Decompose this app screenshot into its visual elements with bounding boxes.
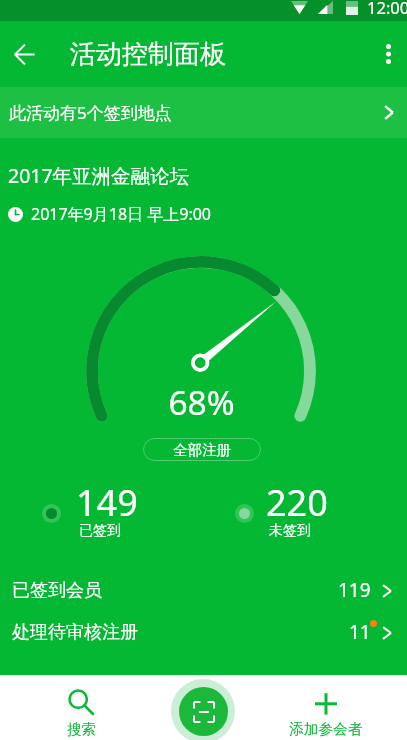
button[interactable]: 全部注册 xyxy=(143,438,261,461)
staticText: 68% xyxy=(0,379,405,425)
staticText: 搜索 xyxy=(67,720,96,738)
staticText: 2017年9月18日 早上9:00 xyxy=(31,203,211,225)
button[interactable]: Back xyxy=(0,30,48,78)
staticText: 149 xyxy=(76,478,138,527)
staticText: 全部注册 xyxy=(173,441,231,459)
staticText: 已签到会员 xyxy=(12,579,102,602)
staticText: 此活动有5个签到地点 xyxy=(9,101,172,124)
button[interactable]: 添加参会者 xyxy=(281,675,371,740)
staticText: 处理待审核注册 xyxy=(12,621,138,644)
button[interactable]: 此活动有5个签到地点 xyxy=(0,87,407,138)
button[interactable]: 搜索 xyxy=(36,675,126,740)
button[interactable]: 已签到会员 xyxy=(0,569,407,611)
staticText: 添加参会者 xyxy=(289,720,363,739)
staticText: 未签到 xyxy=(269,522,311,540)
staticText: 2017年亚洲金融论坛 xyxy=(8,162,190,189)
button[interactable]: More options xyxy=(366,32,407,76)
staticText: 119 xyxy=(338,577,371,603)
button[interactable]: 处理待审核注册 xyxy=(0,611,407,653)
staticText: 11 xyxy=(349,619,371,645)
staticText: 活动控制面板 xyxy=(70,38,226,71)
staticText: 220 xyxy=(266,478,328,527)
staticText: 12:00 xyxy=(367,0,407,17)
staticText: 已签到 xyxy=(79,522,121,540)
button[interactable]: Scan QR code xyxy=(179,687,228,736)
